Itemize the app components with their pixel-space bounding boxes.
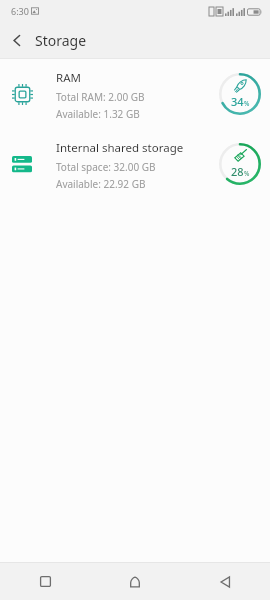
staticText: 28 bbox=[231, 164, 244, 179]
staticText: RAM bbox=[56, 70, 81, 86]
staticText: Internal shared storage bbox=[56, 140, 184, 156]
button[interactable]: Internal shared storage bbox=[0, 129, 270, 199]
staticText: % bbox=[244, 99, 250, 108]
staticText: Available: 1.32 GB bbox=[56, 107, 140, 121]
button[interactable]: Boost RAM bbox=[214, 68, 266, 120]
button[interactable]: RAM bbox=[0, 59, 270, 129]
staticText: Total space: 32.00 GB bbox=[56, 160, 156, 174]
button[interactable]: Home bbox=[90, 563, 180, 600]
button[interactable]: Back bbox=[0, 23, 34, 57]
button[interactable]: Clean storage bbox=[214, 138, 266, 190]
staticText: % bbox=[244, 169, 250, 178]
button[interactable]: Back bbox=[180, 563, 270, 600]
staticText: 6:30 bbox=[11, 5, 29, 17]
staticText: Storage bbox=[35, 31, 87, 50]
staticText: Available: 22.92 GB bbox=[56, 177, 146, 191]
button[interactable]: Recents bbox=[0, 563, 90, 600]
staticText: Total RAM: 2.00 GB bbox=[56, 90, 145, 104]
staticText: 34 bbox=[231, 94, 244, 109]
